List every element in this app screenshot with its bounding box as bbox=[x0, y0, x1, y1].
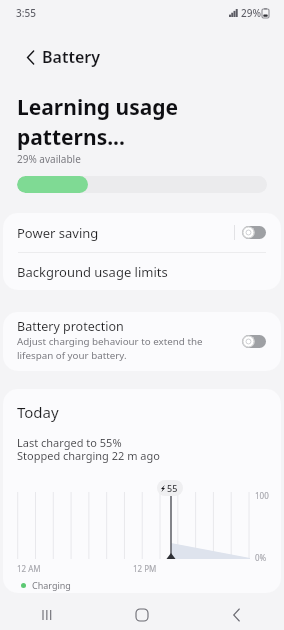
button[interactable]: Back bbox=[189, 600, 284, 630]
button[interactable]: Back bbox=[20, 47, 40, 67]
staticText: Power saving bbox=[17, 224, 99, 242]
button[interactable]: Background usage limits bbox=[3, 253, 281, 290]
button[interactable]: Battery protection bbox=[3, 312, 281, 371]
button[interactable]: Power saving bbox=[3, 213, 281, 252]
staticText: Learning usage patterns... bbox=[17, 93, 179, 151]
staticText: Charging bbox=[32, 579, 71, 591]
staticText: Background usage limits bbox=[17, 263, 168, 281]
staticText: 0% bbox=[255, 552, 267, 563]
staticText: Battery protection bbox=[17, 318, 124, 335]
staticText: Today bbox=[17, 402, 59, 422]
button[interactable]: Home bbox=[94, 600, 189, 630]
button[interactable]: Recents bbox=[0, 600, 94, 630]
staticText: 12 PM bbox=[133, 563, 157, 574]
staticText: 3:55 bbox=[16, 6, 36, 20]
staticText: 12 AM bbox=[17, 563, 41, 574]
staticText: 100 bbox=[255, 490, 269, 501]
staticText: Battery bbox=[42, 46, 100, 68]
staticText: 29% bbox=[241, 6, 261, 20]
staticText: Last charged to 55% Stopped charging 22 … bbox=[17, 435, 160, 463]
staticText: 55 bbox=[167, 482, 178, 494]
staticText: 29% available bbox=[17, 152, 81, 166]
staticText: Adjust charging behaviour to extend the … bbox=[17, 335, 203, 362]
